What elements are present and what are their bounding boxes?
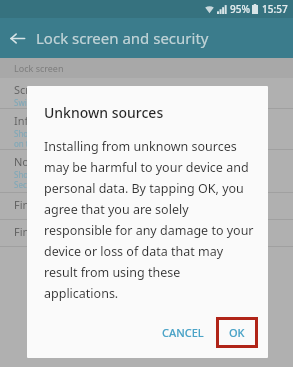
staticText: CANCEL (162, 325, 204, 340)
button[interactable]: CANCEL (152, 317, 214, 348)
staticText: Info and app shortcuts (14, 113, 132, 128)
staticText: Show information and app shortcuts on th… (14, 128, 152, 149)
button[interactable]: Back (0, 21, 34, 55)
staticText: 95% (230, 2, 250, 16)
staticText: Find My Mobile (14, 224, 93, 239)
button[interactable]: OK (219, 320, 255, 345)
staticText: Swipe (14, 97, 37, 108)
button[interactable]: Screen lock type (0, 78, 293, 108)
staticText: Show content Secure lock settings (14, 169, 89, 190)
staticText: Lock screen (14, 62, 64, 74)
button[interactable]: Info and app shortcuts (0, 109, 293, 149)
staticText: 15:57 (262, 2, 288, 16)
staticText: Fingerprints (14, 197, 78, 212)
staticText: Notifications on lock screen (14, 154, 157, 169)
staticText: Installing from unknown sources may be h… (44, 138, 257, 302)
staticText: Lock screen and security (36, 28, 209, 48)
staticText: Screen lock type (14, 82, 98, 97)
button[interactable]: Fingerprints (0, 193, 293, 219)
button[interactable]: Find My Mobile (0, 220, 293, 246)
staticText: OK (229, 325, 245, 340)
button[interactable]: Notifications on lock screen (0, 150, 293, 192)
staticText: Unknown sources (44, 103, 164, 122)
